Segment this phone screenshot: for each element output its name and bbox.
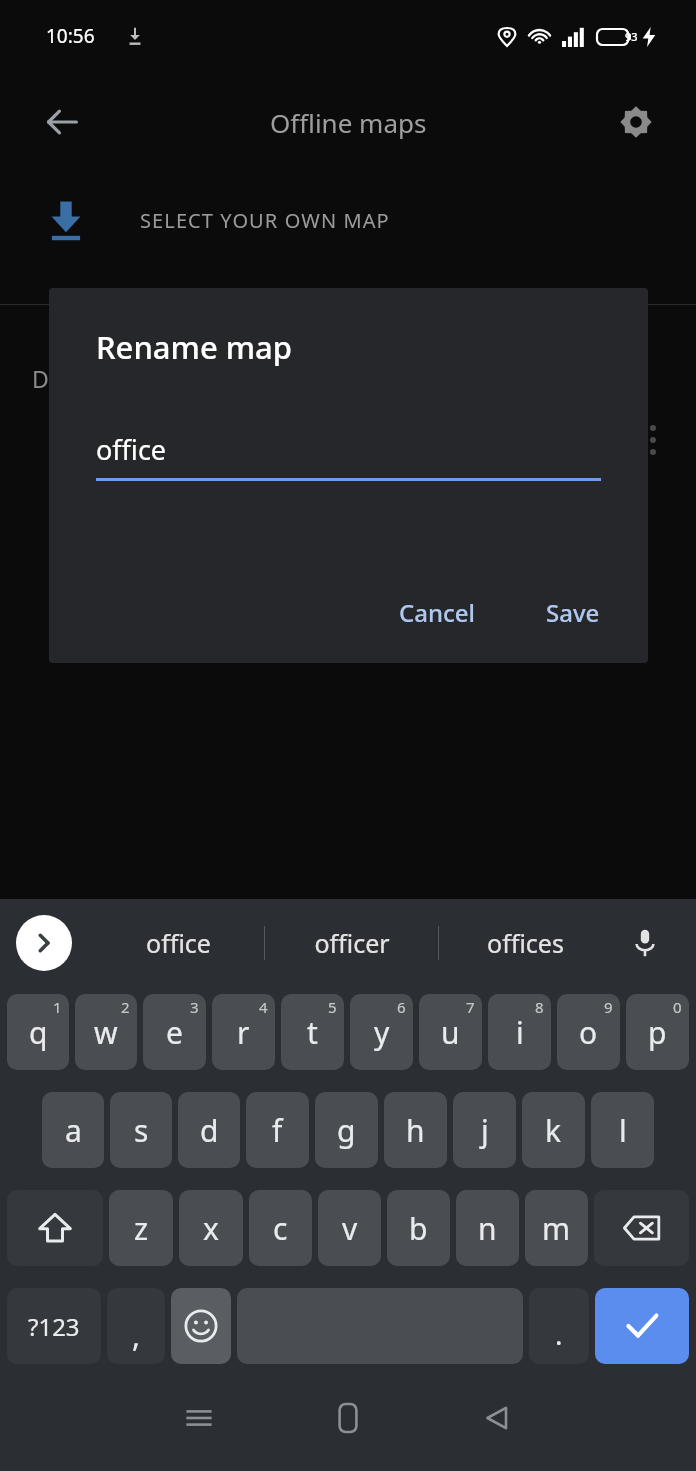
button[interactable]: o [557,994,620,1070]
staticText: j [481,1110,489,1151]
button[interactable]: b [387,1190,450,1266]
staticText: h [406,1110,425,1151]
staticText: 9 [604,997,613,1017]
button[interactable]: w [75,994,137,1070]
button[interactable]: Voice input [618,916,672,970]
staticText: 1 [53,997,62,1017]
staticText: 8 [535,997,544,1017]
button[interactable]: f [246,1092,309,1168]
button[interactable]: SELECT YOUR OWN MAP [0,172,696,268]
button[interactable]: q [7,994,69,1070]
staticText: Offline maps [270,105,427,140]
button[interactable]: office [96,431,601,481]
staticText: d [200,1110,219,1151]
staticText: m [542,1208,571,1249]
staticText: Save [546,596,600,629]
staticText: l [619,1110,627,1151]
button[interactable]: Done [595,1288,689,1364]
button[interactable]: offices [439,899,612,987]
button[interactable]: h [384,1092,447,1168]
button[interactable]: u [419,994,482,1070]
button[interactable]: Save [530,584,616,641]
staticText: y [374,1012,390,1053]
button[interactable]: Emoji [171,1288,231,1364]
button[interactable]: a [42,1092,104,1168]
staticText: z [134,1208,149,1249]
button[interactable]: Recents [166,1385,232,1451]
button[interactable]: v [318,1190,381,1266]
staticText: SELECT YOUR OWN MAP [140,207,390,234]
staticText: n [478,1208,497,1249]
button[interactable]: e [143,994,206,1070]
staticText: Rename map [96,326,293,368]
staticText: 4 [259,997,268,1017]
staticText: o [579,1012,598,1053]
staticText: a [65,1110,82,1151]
button[interactable]: Settings [600,86,672,158]
button[interactable]: l [591,1092,654,1168]
button[interactable]: p [626,994,689,1070]
button[interactable]: x [179,1190,243,1266]
button[interactable]: i [488,994,551,1070]
button[interactable]: Backspace [594,1190,689,1266]
button[interactable]: , [107,1288,165,1364]
staticText: D [32,363,49,394]
button[interactable]: k [522,1092,585,1168]
staticText: x [203,1208,219,1249]
staticText: 2 [121,997,130,1017]
button[interactable]: t [281,994,344,1070]
staticText: 3 [190,997,199,1017]
staticText: . [555,1315,563,1353]
staticText: , [132,1315,141,1356]
button[interactable]: d [178,1092,240,1168]
staticText: c [273,1208,288,1249]
staticText: 93 [625,29,638,44]
staticText: t [307,1012,318,1053]
staticText: p [648,1012,667,1053]
staticText: e [166,1012,183,1053]
staticText: offices [487,926,564,960]
button[interactable]: Back [464,1385,530,1451]
staticText: 0 [673,997,682,1017]
staticText: office [146,926,211,960]
staticText: q [29,1012,48,1053]
button[interactable]: y [350,994,413,1070]
staticText: r [237,1012,250,1053]
staticText: u [441,1012,460,1053]
staticText: i [516,1012,524,1053]
staticText: ?123 [28,1310,80,1343]
button[interactable]: m [525,1190,588,1266]
button[interactable]: g [315,1092,378,1168]
button[interactable]: r [212,994,275,1070]
staticText: k [545,1110,562,1151]
button[interactable]: . [529,1288,589,1364]
staticText: b [409,1208,428,1249]
button[interactable]: Shift [7,1190,103,1266]
button[interactable]: officer [265,899,438,987]
button[interactable]: More suggestions [16,915,72,971]
button[interactable]: Back [26,86,98,158]
staticText: Cancel [399,596,476,629]
button[interactable]: j [453,1092,516,1168]
button[interactable]: s [110,1092,172,1168]
staticText: 5 [328,997,337,1017]
staticText: v [342,1208,358,1249]
staticText: 6 [397,997,406,1017]
staticText: g [337,1110,356,1151]
staticText: w [94,1012,118,1053]
staticText: f [272,1110,283,1151]
button[interactable]: Home [315,1385,381,1451]
button[interactable]: ?123 [7,1288,101,1364]
button[interactable]: office [92,899,264,987]
button[interactable]: z [109,1190,173,1266]
button[interactable]: n [456,1190,519,1266]
button[interactable]: Cancel [383,584,492,641]
staticText: 7 [466,997,475,1017]
staticText: 10:56 [46,23,95,49]
staticText: s [134,1110,149,1151]
button[interactable]: c [249,1190,312,1266]
staticText: officer [314,926,390,960]
staticText: office [96,431,167,468]
